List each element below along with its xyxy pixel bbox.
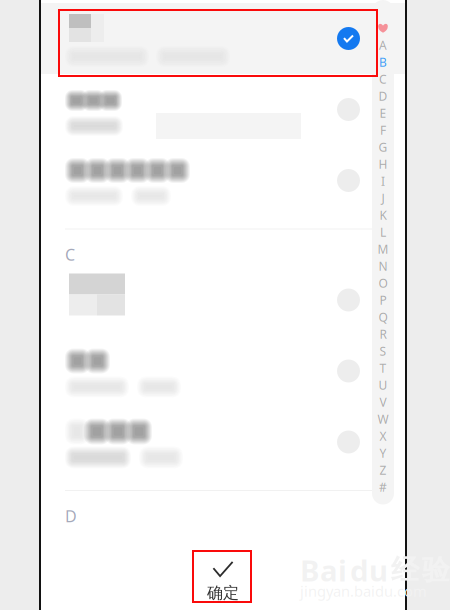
- button[interactable]: Alphabet index: [372, 0, 394, 504]
- staticText: Y: [379, 445, 386, 461]
- staticText: J: [381, 190, 384, 206]
- staticText: T: [379, 360, 386, 376]
- staticText: B: [379, 54, 387, 70]
- staticText: A: [379, 37, 387, 53]
- staticText: F: [380, 122, 386, 138]
- staticText: du: [350, 550, 388, 589]
- staticText: V: [379, 394, 386, 410]
- staticText: E: [379, 105, 386, 121]
- button[interactable]: 确定: [194, 553, 252, 604]
- staticText: C: [379, 71, 387, 87]
- staticText: G: [378, 139, 387, 155]
- staticText: Bai: [300, 550, 347, 589]
- button[interactable]: [41, 406, 405, 477]
- staticText: Z: [379, 462, 386, 478]
- staticText: O: [378, 275, 387, 291]
- staticText: W: [377, 411, 388, 427]
- staticText: 经: [391, 553, 419, 587]
- staticText: I: [381, 173, 385, 189]
- staticText: 确定: [207, 583, 239, 603]
- button[interactable]: [41, 74, 405, 145]
- staticText: X: [379, 428, 386, 444]
- staticText: U: [378, 377, 387, 393]
- button[interactable]: [41, 3, 405, 74]
- staticText: N: [378, 258, 387, 274]
- staticText: K: [379, 207, 386, 223]
- staticText: H: [378, 156, 387, 172]
- staticText: D: [65, 505, 77, 527]
- staticText: R: [379, 326, 386, 342]
- staticText: D: [378, 88, 387, 104]
- staticText: M: [377, 241, 388, 257]
- staticText: Q: [378, 309, 387, 325]
- staticText: #: [379, 479, 387, 495]
- staticText: jingyan.baidu.com: [300, 581, 427, 601]
- staticText: S: [379, 343, 386, 359]
- button[interactable]: [41, 264, 405, 335]
- staticText: P: [379, 292, 386, 308]
- button[interactable]: [41, 335, 405, 406]
- button[interactable]: [41, 145, 405, 216]
- staticText: C: [65, 244, 75, 265]
- staticText: L: [380, 224, 386, 240]
